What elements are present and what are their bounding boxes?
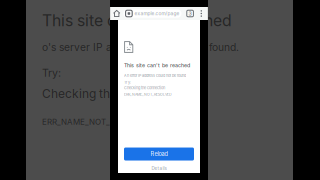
staticText: Checking the connection bbox=[124, 86, 165, 90]
staticText: o's server IP address could not be found… bbox=[42, 41, 239, 53]
button[interactable]: Details bbox=[124, 160, 194, 173]
button[interactable]: Tabs bbox=[186, 10, 194, 17]
staticText: ERR_NAME_NOT_RESOLVED bbox=[124, 92, 172, 97]
staticText: This site can't be reached bbox=[42, 11, 232, 30]
button[interactable]: More options bbox=[198, 10, 205, 17]
staticText: Try: bbox=[124, 80, 131, 85]
button[interactable]: Home bbox=[113, 10, 120, 17]
staticText: An error IP address could not be found bbox=[124, 73, 186, 78]
staticText: Reload bbox=[150, 151, 167, 157]
staticText: ERR_NAME_NOT_RESOLVED bbox=[42, 117, 152, 127]
staticText: Checking the connection bbox=[42, 86, 183, 101]
staticText: Details bbox=[151, 165, 166, 171]
staticText: 3 bbox=[189, 10, 192, 17]
staticText: Try: bbox=[42, 66, 61, 79]
staticText: This site can't be reached bbox=[124, 62, 190, 68]
button[interactable]: Reload bbox=[124, 147, 194, 160]
staticText: example.com/page bbox=[134, 11, 179, 16]
button[interactable]: example.com/page bbox=[123, 9, 181, 18]
